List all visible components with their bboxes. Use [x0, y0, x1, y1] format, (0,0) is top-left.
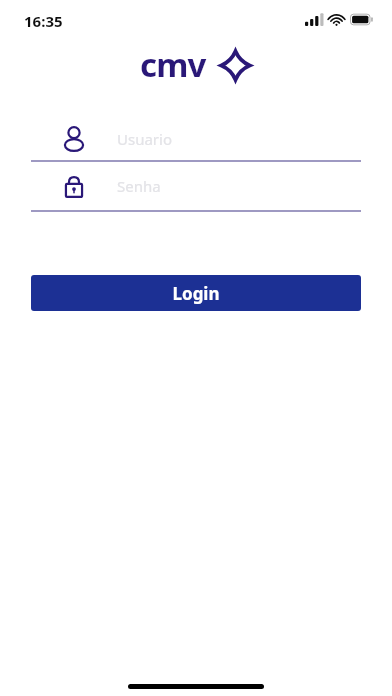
other: Senha: [31, 162, 117, 210]
staticText: Login: [172, 282, 220, 305]
staticText: cmv: [140, 42, 206, 87]
button[interactable]: Login: [31, 275, 361, 311]
staticText: Senha: [117, 176, 161, 196]
other: Usuario: [31, 118, 117, 160]
staticText: Usuario: [117, 129, 172, 149]
staticText: 16:35: [24, 11, 63, 31]
button[interactable]: Usuario: [31, 118, 361, 160]
button[interactable]: Senha: [31, 162, 361, 210]
